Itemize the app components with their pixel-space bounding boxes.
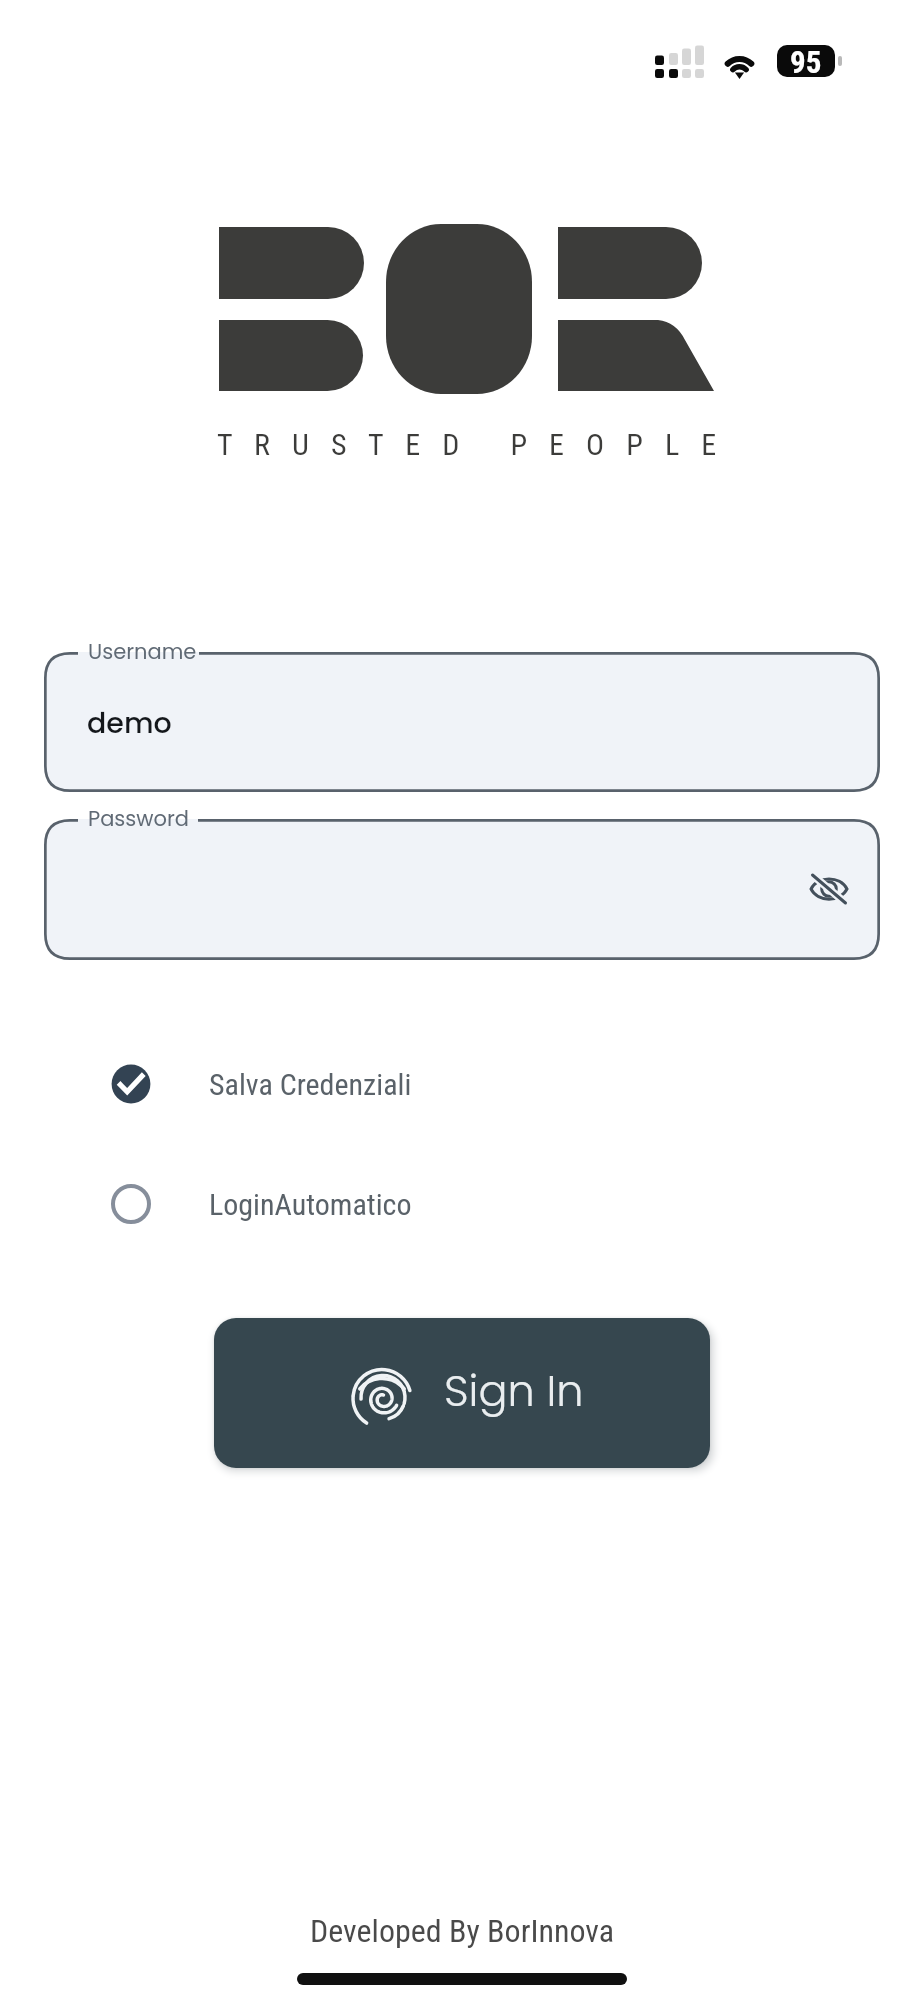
staticText: Password <box>88 804 189 833</box>
staticText: T R U S T E D P E O P L E <box>217 427 724 462</box>
staticText: demo <box>87 703 172 743</box>
button[interactable]: Show password <box>793 853 865 925</box>
staticText: Sign In <box>444 1361 584 1421</box>
button[interactable]: LoginAutomatico <box>0 1174 924 1234</box>
staticText: Username <box>88 637 197 666</box>
button[interactable]: Salva Credenziali <box>0 1054 924 1114</box>
staticText: LoginAutomatico <box>209 1187 412 1222</box>
button[interactable]: Sign In <box>214 1318 710 1468</box>
staticText: Developed By BorInnova <box>310 1912 614 1950</box>
staticText: 95 <box>790 45 822 76</box>
staticText: Salva Credenziali <box>209 1067 412 1102</box>
